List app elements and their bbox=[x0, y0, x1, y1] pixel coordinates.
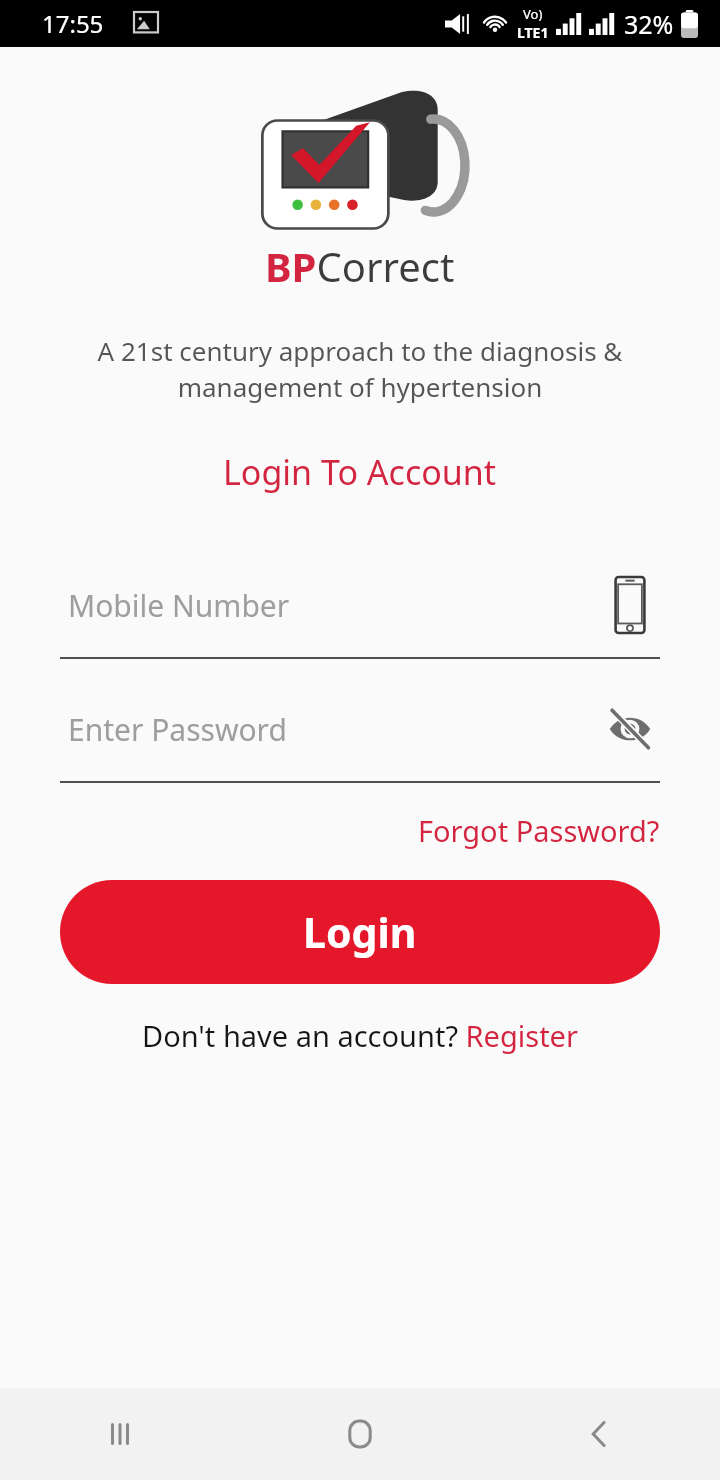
button[interactable]: Enter Password bbox=[60, 691, 660, 767]
button[interactable]: Recent apps bbox=[0, 1388, 240, 1480]
staticText: Don't have an account? Register bbox=[142, 1016, 578, 1055]
staticText: A 21st century approach to the diagnosis… bbox=[75, 333, 645, 405]
staticText: Login bbox=[303, 904, 417, 960]
button[interactable]: Mobile Number bbox=[60, 567, 660, 643]
staticText: Mobile Number bbox=[68, 585, 600, 626]
staticText: 32% bbox=[624, 7, 674, 41]
staticText: Login To Account bbox=[223, 449, 497, 495]
button[interactable]: Home bbox=[240, 1388, 480, 1480]
staticText: Vo) bbox=[523, 5, 543, 23]
button[interactable]: Don't have an account? Register bbox=[136, 1010, 584, 1061]
button[interactable]: Login bbox=[60, 880, 660, 984]
button[interactable]: Show password bbox=[600, 699, 660, 759]
staticText: LTE1 bbox=[517, 23, 549, 42]
staticText: BPCorrect bbox=[265, 239, 455, 293]
button[interactable]: Forgot Password? bbox=[412, 805, 666, 856]
button[interactable]: Mobile number keypad bbox=[600, 575, 660, 635]
staticText: 17:55 bbox=[42, 7, 104, 40]
staticText: Forgot Password? bbox=[418, 811, 660, 850]
button[interactable]: Back bbox=[480, 1388, 720, 1480]
staticText: Enter Password bbox=[68, 709, 600, 750]
